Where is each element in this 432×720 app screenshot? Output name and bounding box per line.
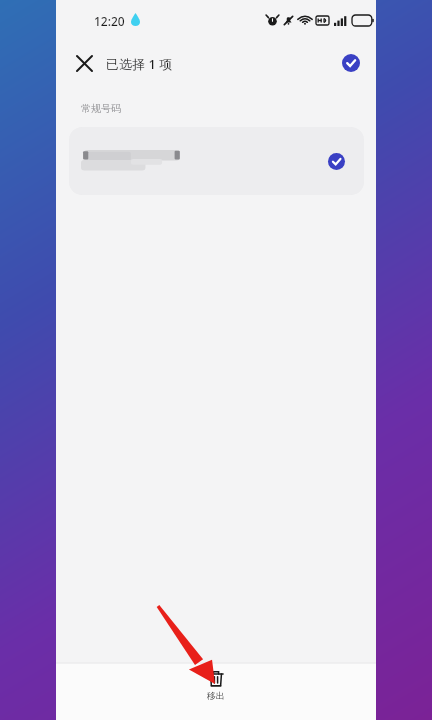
staticText: 常规号码 — [81, 102, 121, 115]
staticText: 移出 — [207, 690, 225, 701]
button[interactable]: 移出 — [181, 670, 251, 701]
button[interactable]: 确认 — [333, 45, 369, 81]
button[interactable]: 已选中 — [69, 127, 364, 195]
button[interactable]: 已选中 — [321, 146, 351, 176]
button[interactable]: 关闭 — [66, 45, 102, 81]
staticText: 12:20 — [94, 13, 125, 29]
staticText: 已选择 1 项 — [106, 55, 173, 73]
